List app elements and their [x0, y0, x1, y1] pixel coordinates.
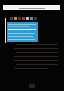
button[interactable]: Home: [29, 84, 35, 88]
button[interactable]: [7, 22, 38, 42]
button[interactable]: [3, 5, 60, 10]
